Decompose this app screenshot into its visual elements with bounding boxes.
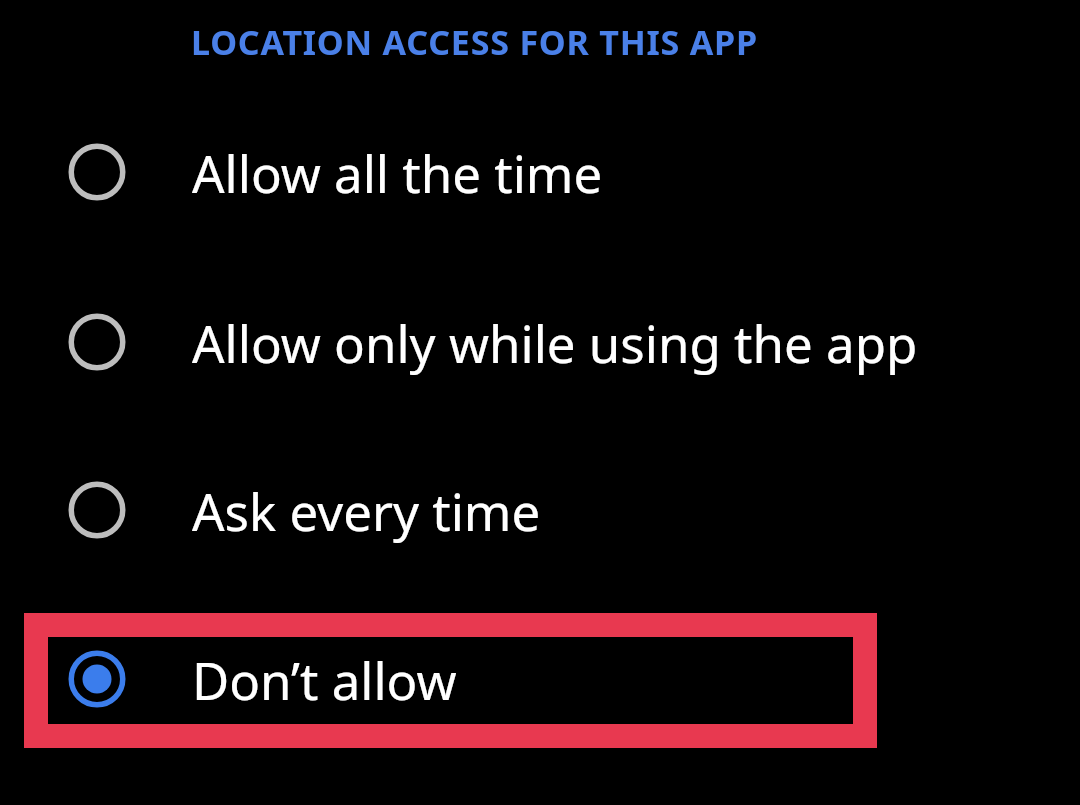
staticText: Don’t allow bbox=[192, 645, 457, 714]
button[interactable]: Ask every time bbox=[0, 435, 1080, 585]
other: Selected option highlight bbox=[24, 613, 877, 748]
button[interactable]: Allow all the time bbox=[0, 97, 1080, 247]
staticText: LOCATION ACCESS FOR THIS APP bbox=[191, 19, 758, 65]
button[interactable]: Don’t allow bbox=[0, 604, 1080, 754]
button[interactable]: Allow only while using the app bbox=[0, 267, 1080, 417]
staticText: Allow only while using the app bbox=[192, 308, 918, 377]
staticText: Ask every time bbox=[192, 476, 541, 545]
staticText: Allow all the time bbox=[192, 138, 603, 207]
